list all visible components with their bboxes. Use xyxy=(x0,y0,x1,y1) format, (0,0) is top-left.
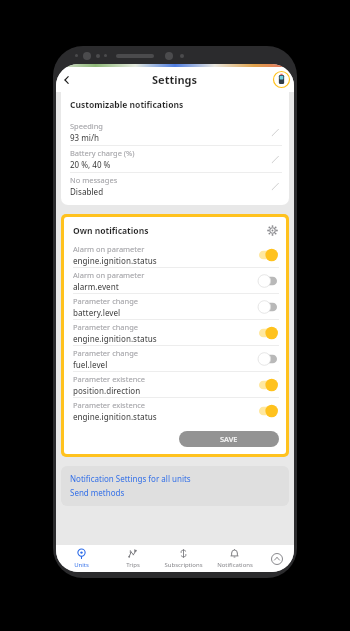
staticText: 20 %, 40 % xyxy=(70,159,111,170)
button[interactable]: Parameter change xyxy=(73,294,279,319)
button[interactable]: Alarm on parameter xyxy=(73,268,279,293)
staticText: Own notifications xyxy=(73,225,266,237)
button[interactable]: On xyxy=(257,378,279,392)
button[interactable]: On xyxy=(257,248,279,262)
other: Edit xyxy=(268,125,282,139)
button[interactable]: Units xyxy=(56,545,107,572)
staticText: Parameter existence xyxy=(73,400,146,410)
button[interactable]: Back xyxy=(56,69,78,91)
button[interactable]: On xyxy=(257,326,279,340)
button[interactable]: SAVE xyxy=(179,431,279,447)
staticText: Alarm on parameter xyxy=(73,270,145,280)
button[interactable]: More xyxy=(260,545,294,572)
button[interactable]: No messages xyxy=(70,173,282,199)
staticText: Settings xyxy=(152,72,198,87)
staticText: Parameter existence xyxy=(73,374,146,384)
staticText: Alarm on parameter xyxy=(73,244,145,254)
button[interactable]: Parameter existence xyxy=(73,372,279,397)
other: Edit xyxy=(268,179,282,193)
staticText: battery.level xyxy=(73,307,121,318)
button[interactable]: Alarm on parameter xyxy=(73,242,279,267)
staticText: Parameter change xyxy=(73,348,139,358)
staticText: alarm.event xyxy=(73,281,119,292)
staticText: Speeding xyxy=(70,121,103,131)
other: Edit xyxy=(268,152,282,166)
button[interactable]: Configure notifications xyxy=(266,224,279,237)
staticText: SAVE xyxy=(220,434,238,444)
button[interactable]: Off xyxy=(257,352,279,366)
staticText: Notifications xyxy=(217,561,253,569)
staticText: Disabled xyxy=(70,186,104,197)
staticText: Units xyxy=(74,561,89,569)
staticText: engine.ignition.status xyxy=(73,255,157,266)
button[interactable]: Send methods xyxy=(70,487,125,498)
staticText: position.direction xyxy=(73,385,141,396)
staticText: fuel.level xyxy=(73,359,108,370)
staticText: engine.ignition.status xyxy=(73,411,157,422)
staticText: Parameter change xyxy=(73,296,139,306)
button[interactable]: Notifications xyxy=(209,545,260,572)
button[interactable]: Parameter change xyxy=(73,346,279,371)
button[interactable]: Parameter change xyxy=(73,320,279,345)
button[interactable]: Battery xyxy=(273,71,290,88)
button[interactable]: Subscriptions xyxy=(158,545,209,572)
staticText: Subscriptions xyxy=(164,561,203,569)
staticText: 93 mi/h xyxy=(70,132,100,143)
staticText: Trips xyxy=(126,561,140,569)
button[interactable]: On xyxy=(257,404,279,418)
button[interactable]: Off xyxy=(257,300,279,314)
button[interactable]: Battery charge (%) xyxy=(70,146,282,172)
staticText: Battery charge (%) xyxy=(70,148,135,158)
button[interactable]: Parameter existence xyxy=(73,398,279,423)
staticText: engine.ignition.status xyxy=(73,333,157,344)
button[interactable]: Off xyxy=(257,274,279,288)
button[interactable]: Speeding xyxy=(70,119,282,145)
staticText: No messages xyxy=(70,175,118,185)
button[interactable]: Trips xyxy=(107,545,158,572)
button[interactable]: Notification Settings for all units xyxy=(70,473,191,484)
staticText: Customizable notifications xyxy=(70,99,184,111)
staticText: Parameter change xyxy=(73,322,139,332)
